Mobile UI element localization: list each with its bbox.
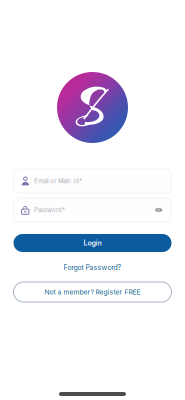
staticText: Password*: [34, 206, 65, 214]
staticText: Email or Main Id*: [34, 177, 82, 185]
button[interactable]: Not a member? Register FREE: [13, 282, 171, 302]
staticText: Not a member? Register FREE: [44, 288, 140, 296]
button[interactable]: Forgot Password?: [13, 262, 171, 273]
button[interactable]: Login: [13, 234, 171, 252]
staticText: Login: [83, 239, 101, 247]
staticText: Forgot Password?: [63, 263, 121, 272]
